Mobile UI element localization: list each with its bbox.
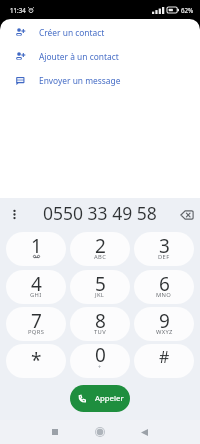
staticText: 3 (159, 233, 170, 259)
staticText: ABC (94, 253, 107, 261)
staticText: 2 (95, 233, 106, 259)
button[interactable]: 5 (70, 270, 130, 304)
button[interactable]: Backspace (177, 205, 197, 225)
button[interactable]: 3 (134, 232, 194, 266)
staticText: PQRS (28, 328, 45, 336)
staticText: 7 (31, 308, 42, 334)
staticText: Appeler (95, 393, 124, 404)
staticText: Créer un contact (39, 27, 105, 38)
staticText: MNO (156, 291, 172, 299)
staticText: 1 (31, 233, 42, 259)
staticText: GHI (30, 291, 42, 299)
button[interactable]: Home (88, 420, 112, 444)
staticText: 11:34 (10, 6, 26, 14)
staticText: 0550 33 49 58 (43, 201, 157, 225)
staticText: 62% (181, 6, 194, 14)
button[interactable]: Appeler (70, 385, 130, 412)
button[interactable]: 7 (6, 307, 66, 341)
button[interactable]: Back (132, 420, 156, 444)
staticText: + (98, 363, 102, 370)
button[interactable]: 8 (70, 307, 130, 341)
button[interactable]: Ajouter à un contact (0, 44, 200, 68)
button[interactable]: 0 (70, 344, 130, 378)
button[interactable]: 2 (70, 232, 130, 266)
staticText: 8 (95, 308, 106, 334)
staticText: 5 (95, 271, 106, 297)
button[interactable]: 9 (134, 307, 194, 341)
button[interactable]: 4 (6, 270, 66, 304)
staticText: Ajouter à un contact (39, 51, 119, 62)
button[interactable]: * (6, 344, 66, 378)
button[interactable]: Envoyer un message (0, 68, 200, 92)
button[interactable]: More options (5, 205, 24, 224)
button[interactable]: 6 (134, 270, 194, 304)
staticText: 4 (31, 271, 42, 297)
button[interactable]: Créer un contact (0, 20, 200, 44)
staticText: DEF (158, 253, 170, 261)
button[interactable]: # (134, 344, 194, 378)
staticText: WXYZ (156, 328, 173, 336)
staticText: * (31, 347, 42, 373)
button[interactable]: 1 (6, 232, 66, 266)
staticText: # (159, 346, 170, 368)
staticText: Envoyer un message (39, 75, 121, 86)
staticText: 0 (95, 344, 106, 368)
staticText: 9 (159, 308, 170, 334)
staticText: JKL (95, 291, 105, 299)
button[interactable]: Recent apps (43, 420, 67, 444)
staticText: TUV (94, 328, 106, 336)
staticText: 6 (159, 271, 170, 297)
